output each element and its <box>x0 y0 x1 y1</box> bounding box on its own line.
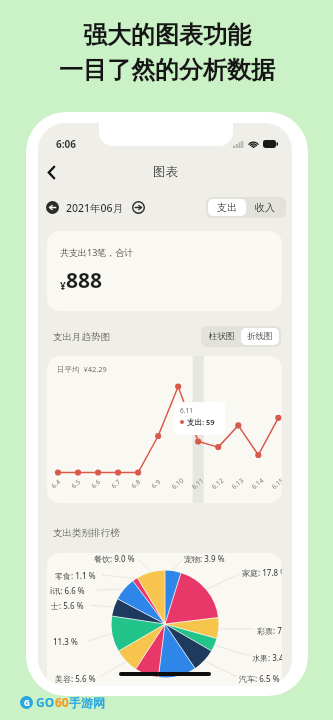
staticText: 零食: 1.1 % <box>55 570 96 581</box>
staticText: 柱状图 <box>209 331 235 342</box>
button[interactable]: Back <box>39 160 63 184</box>
staticText: 折线图 <box>247 331 273 342</box>
staticText: 日平均 ¥42.29 <box>57 364 107 374</box>
staticText: 支出: 59 <box>187 417 215 427</box>
staticText: 11.3 % <box>53 636 78 647</box>
staticText: 6.13 <box>230 476 245 491</box>
button[interactable]: 收入 <box>246 199 284 216</box>
staticText: 6.10 <box>170 476 185 491</box>
button[interactable]: Previous month <box>46 201 59 214</box>
staticText: 6.9 <box>149 477 163 490</box>
staticText: 6.6 <box>89 477 103 490</box>
staticText: 6.8 <box>129 477 143 490</box>
staticText: 餐饮: 9.0 % <box>94 553 135 564</box>
staticText: 水果: 3.4 <box>252 652 282 663</box>
staticText: 家庭: 17.8 % <box>242 567 282 578</box>
staticText: 图表 <box>153 164 178 180</box>
staticText: 2021年06月 <box>66 201 124 215</box>
staticText: 60 <box>55 694 69 710</box>
staticText: 一目了然的分析数据 <box>59 55 275 85</box>
staticText: ¥ <box>60 279 66 293</box>
staticText: 6.4 <box>49 477 63 490</box>
staticText: 6:06 <box>56 137 76 151</box>
staticText: 支出 <box>217 201 237 214</box>
staticText: 手游网 <box>69 695 105 710</box>
staticText: GO <box>36 694 55 710</box>
staticText: G <box>24 697 30 708</box>
staticText: 6.14 <box>250 476 265 491</box>
button[interactable]: Next month <box>132 201 145 214</box>
button[interactable]: 日平均 ¥42.29 <box>47 356 282 503</box>
staticText: 支出类别排行榜 <box>53 527 120 539</box>
staticText: 6.15 <box>270 476 282 491</box>
staticText: 强大的图表功能 <box>83 20 251 50</box>
staticText: 士: 5.6 % <box>51 600 84 611</box>
staticText: 6.5 <box>69 477 83 490</box>
staticText: 美容: 5.6 % <box>55 673 96 684</box>
staticText: 支出月趋势图 <box>53 331 110 343</box>
button[interactable]: 折线图 <box>241 328 279 345</box>
staticText: 共支出13笔，合计 <box>60 246 134 258</box>
staticText: 888 <box>66 266 103 295</box>
button[interactable]: 共支出13笔，合计 <box>47 231 282 311</box>
staticText: 宠物: 3.9 % <box>184 553 225 564</box>
staticText: 6.7 <box>109 477 123 490</box>
button[interactable]: 柱状图 <box>203 328 241 345</box>
button[interactable]: 支出 <box>208 199 246 216</box>
staticText: 收入 <box>255 201 275 214</box>
staticText: i讯: 6.6 % <box>50 585 85 596</box>
staticText: 6.11 <box>180 406 193 415</box>
staticText: 汽车: 6.5 % <box>239 673 280 684</box>
staticText: 6.12 <box>210 476 225 491</box>
staticText: 6.11 <box>190 476 205 491</box>
staticText: 彩票: 7 <box>257 625 282 636</box>
